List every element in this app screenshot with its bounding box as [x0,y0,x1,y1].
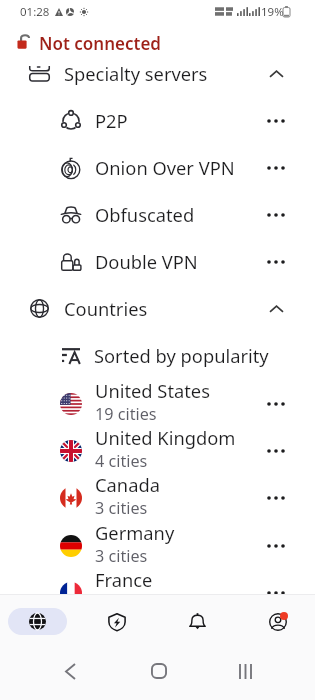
staticText: 19% [261,4,284,20]
button[interactable]: Double VPN [0,238,315,285]
staticText: Countries [64,296,148,321]
button[interactable]: United Kingdom [0,427,315,474]
staticText: Specialty servers [64,61,208,86]
staticText: 19 cities [95,403,157,425]
staticText: Not connected [39,32,161,55]
staticText: Sorted by popularity [94,343,269,368]
staticText: United States [95,378,210,403]
button[interactable]: Onion Over VPN [0,144,315,191]
staticText: 5 cities [95,592,148,614]
button[interactable]: Threat protection [82,595,152,648]
staticText: Double VPN [95,249,198,274]
button[interactable]: Servers [2,595,72,648]
button[interactable]: Sorted by popularity [0,332,315,379]
button[interactable]: Specialty servers [0,50,315,97]
staticText: Canada [95,472,160,497]
staticText: 3 cities [95,545,148,567]
staticText: France [95,567,153,592]
button[interactable]: France [0,569,315,616]
button[interactable]: P2P [0,97,315,144]
button[interactable]: Obfuscated [0,191,315,238]
staticText: 4 cities [95,450,148,472]
button[interactable]: Countries [0,285,315,332]
button[interactable]: Canada [0,474,315,521]
staticText: P2P [95,108,128,133]
staticText: 3 cities [95,497,148,519]
staticText: Obfuscated [95,202,195,227]
button[interactable]: Profile [243,595,313,648]
staticText: Onion Over VPN [95,155,235,180]
button[interactable]: Notifications [162,595,232,648]
staticText: 01:28 [20,4,50,20]
button[interactable]: Germany [0,522,315,569]
button[interactable]: United States [0,380,315,427]
staticText: Germany [95,520,175,545]
staticText: United Kingdom [95,425,236,450]
